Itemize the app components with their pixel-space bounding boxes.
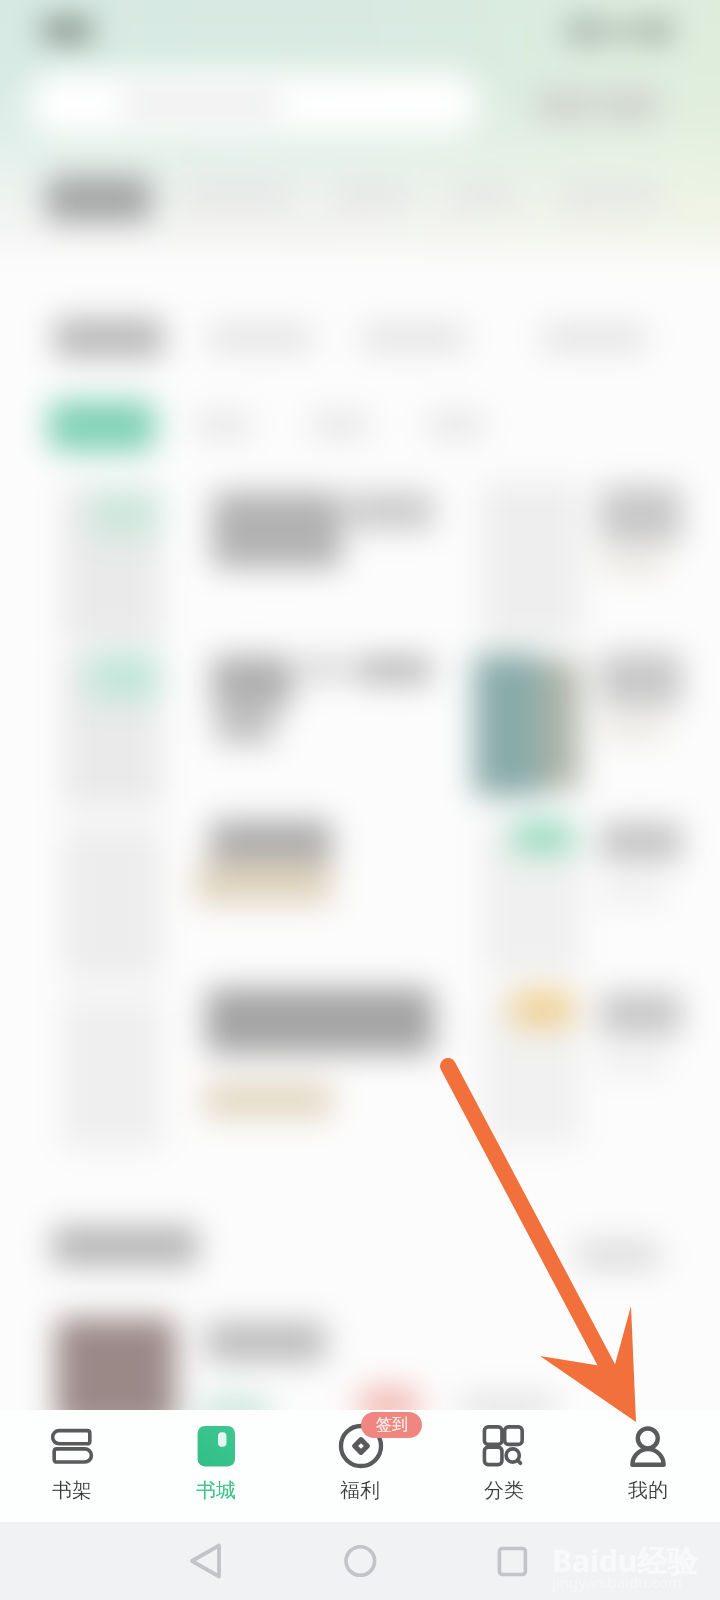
- other: 书架: [50, 1424, 94, 1468]
- other: 福利: [339, 1424, 383, 1468]
- staticText: 签到: [376, 1415, 408, 1435]
- staticText: 书架: [52, 1478, 92, 1503]
- button[interactable]: 分类: [432, 1410, 576, 1522]
- button[interactable]: 书架: [0, 1410, 144, 1522]
- other: 我的: [626, 1424, 670, 1468]
- staticText: 福利: [340, 1478, 380, 1503]
- other: 书城: [194, 1424, 238, 1468]
- button[interactable]: 我的: [576, 1410, 720, 1522]
- other: 分类: [482, 1424, 526, 1468]
- button[interactable]: 福利: [288, 1410, 432, 1522]
- staticText: 我的: [628, 1478, 668, 1503]
- staticText: 分类: [484, 1478, 524, 1503]
- button[interactable]: 书城: [144, 1410, 288, 1522]
- staticText: Baidu经验: [552, 1540, 698, 1581]
- staticText: 书城: [196, 1478, 236, 1503]
